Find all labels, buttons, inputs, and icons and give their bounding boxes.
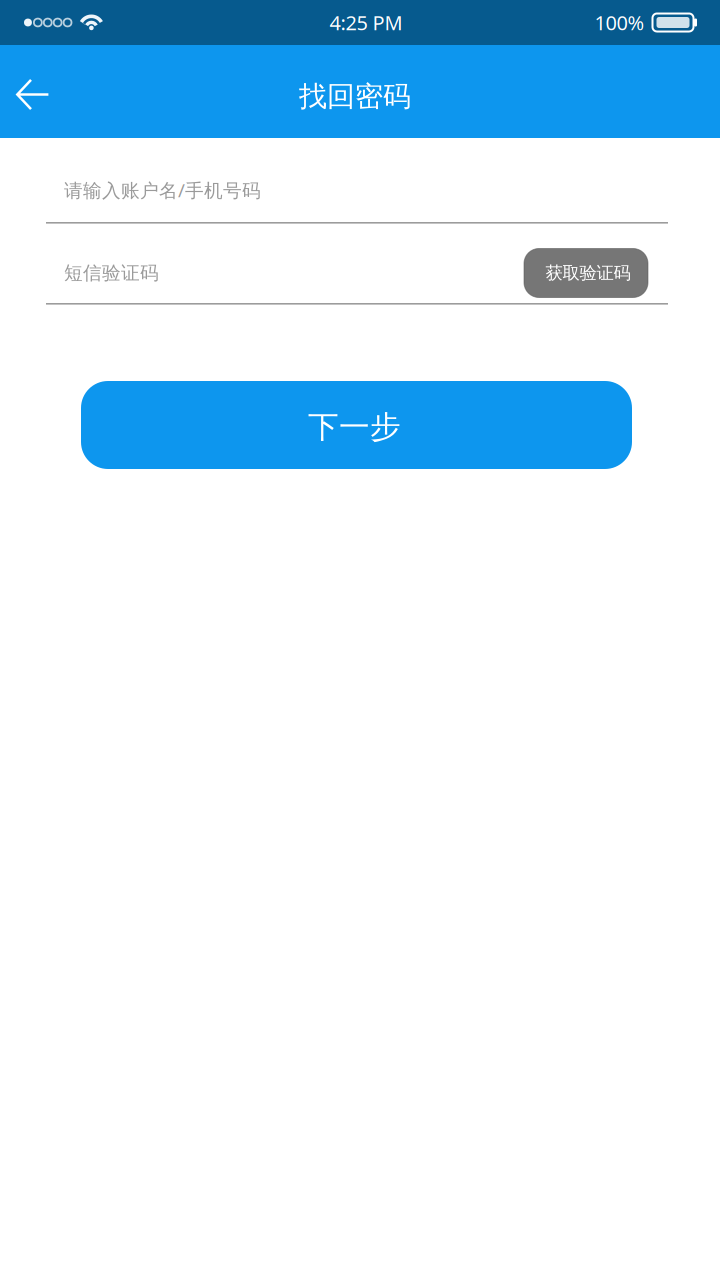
- button[interactable]: Back: [0, 45, 66, 138]
- staticText: 请输入账户名/手机号码: [64, 178, 261, 202]
- staticText: 4:25 PM: [329, 9, 402, 36]
- button[interactable]: 获取验证码: [524, 248, 648, 297]
- staticText: 找回密码: [299, 79, 411, 114]
- button[interactable]: 请输入账户名/手机号码: [0, 138, 720, 222]
- button[interactable]: 下一步: [81, 381, 632, 469]
- staticText: 下一步: [308, 408, 401, 446]
- button[interactable]: 短信验证码: [64, 261, 524, 284]
- staticText: 获取验证码: [545, 262, 630, 284]
- staticText: 短信验证码: [64, 261, 159, 284]
- staticText: 100%: [594, 9, 644, 36]
